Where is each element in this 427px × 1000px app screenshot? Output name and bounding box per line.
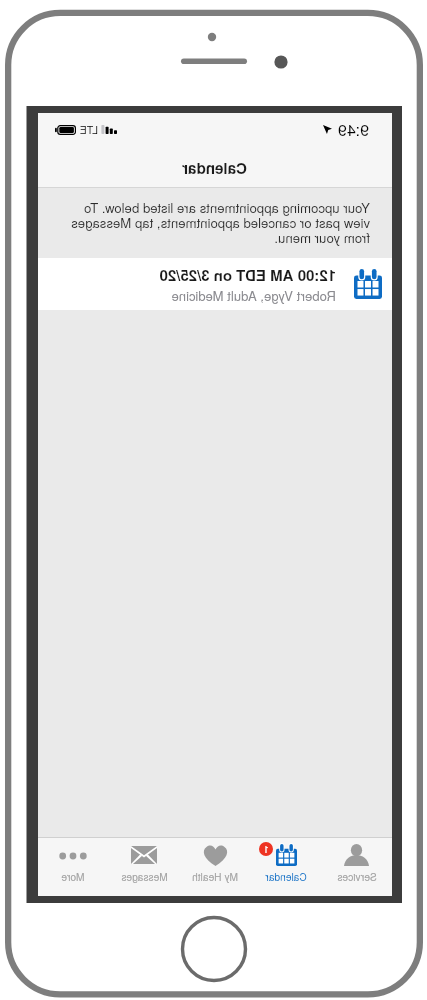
button[interactable]: 1	[251, 838, 322, 896]
staticText: Your upcoming appointments are listed be…	[65, 198, 370, 247]
button[interactable]: My Health	[180, 838, 251, 896]
staticText: 12:00 AM EDT on 3/25/20	[159, 264, 336, 285]
button[interactable]: Messages	[109, 838, 180, 896]
button[interactable]: 12:00 AM EDT on 3/25/20	[38, 258, 392, 310]
staticText: 9:49	[337, 118, 369, 141]
staticText: Messages	[121, 869, 168, 884]
button[interactable]: Services	[322, 838, 392, 896]
staticText: Services	[337, 869, 377, 884]
staticText: Robert Vyge, Adult Medicine	[171, 286, 336, 305]
staticText: More	[61, 869, 85, 884]
staticText: My Health	[192, 869, 238, 884]
staticText: Calendar	[182, 157, 247, 179]
staticText: 1	[263, 842, 269, 856]
staticText: Calendar	[265, 869, 307, 884]
button[interactable]: More	[38, 838, 109, 896]
staticText: LTE	[79, 122, 98, 137]
